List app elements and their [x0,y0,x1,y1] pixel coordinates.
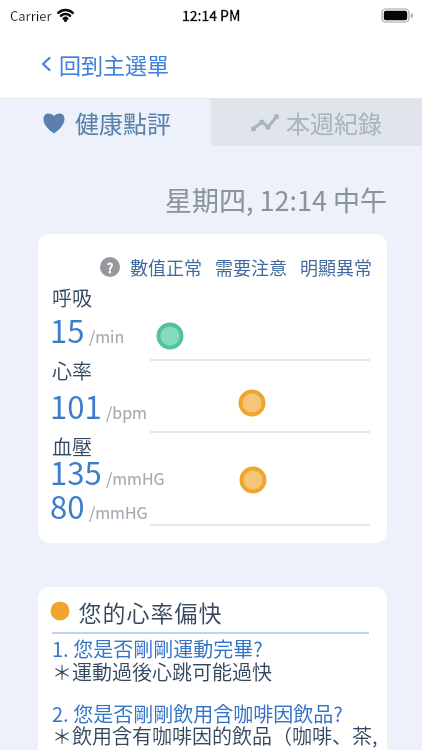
staticText: 心率 [52,356,92,385]
staticText: 需要注意 [215,254,287,280]
staticText: 2. 您是否剛剛飲用含咖啡因飲品? [52,699,343,728]
staticText: 12:14 PM [182,5,241,25]
staticText: 15 [50,307,85,352]
staticText: ＊運動過後心跳可能過快 [52,657,272,686]
button[interactable]: 健康點評 [0,99,211,146]
button[interactable]: 本週紀錄 [211,99,422,146]
staticText: 1. 您是否剛剛運動完畢? [52,634,263,663]
staticText: 80 [50,483,85,528]
staticText: 數值正常 [130,254,202,280]
staticText: ? [107,258,114,277]
staticText: Carrier [10,6,52,25]
staticText: /mmHG [89,500,148,523]
staticText: ＊飲用含有咖啡因的飲品（咖啡、茶, [52,721,378,750]
staticText: /bpm [106,400,147,423]
staticText: 回到主選單 [59,48,170,80]
staticText: 星期四, 12:14 中午 [165,180,388,219]
staticText: /mmHG [106,466,165,489]
button[interactable]: 回到主選單 [41,48,170,80]
staticText: 101 [50,383,102,428]
staticText: 您的心率偏快 [78,595,222,628]
staticText: /min [89,324,125,347]
button[interactable]: ? [100,257,120,277]
staticText: 血壓 [52,432,92,461]
staticText: 本週紀錄 [286,105,382,140]
staticText: 呼吸 [52,283,92,312]
staticText: 健康點評 [75,105,171,140]
staticText: 135 [50,449,102,494]
staticText: 明顯異常 [300,254,372,280]
